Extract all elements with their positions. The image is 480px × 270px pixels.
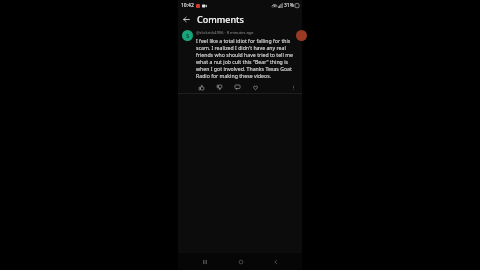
button[interactable]: Heart: [250, 82, 261, 93]
button[interactable]: S: [178, 27, 302, 93]
button[interactable]: Like: [196, 82, 207, 93]
button[interactable]: Dislike: [214, 82, 225, 93]
staticText: 10:42: [181, 2, 194, 9]
button[interactable]: Back: [267, 253, 284, 270]
staticText: I feel like a total idiot for falling fo…: [196, 37, 299, 79]
staticText: 31%: [284, 2, 294, 9]
button[interactable]: Recent apps: [196, 253, 213, 270]
button[interactable]: Home: [232, 253, 249, 270]
button[interactable]: Reply: [232, 82, 243, 93]
button[interactable]: Back: [178, 11, 194, 27]
button[interactable]: More options: [288, 82, 299, 93]
staticText: S: [186, 32, 190, 40]
staticText: Comments: [197, 13, 244, 25]
staticText: @slickrick4956 · 8 minutes ago: [196, 30, 254, 35]
